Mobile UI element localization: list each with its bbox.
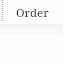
staticText: Order [16, 5, 49, 21]
button[interactable]: Order column header [14, 3, 56, 22]
